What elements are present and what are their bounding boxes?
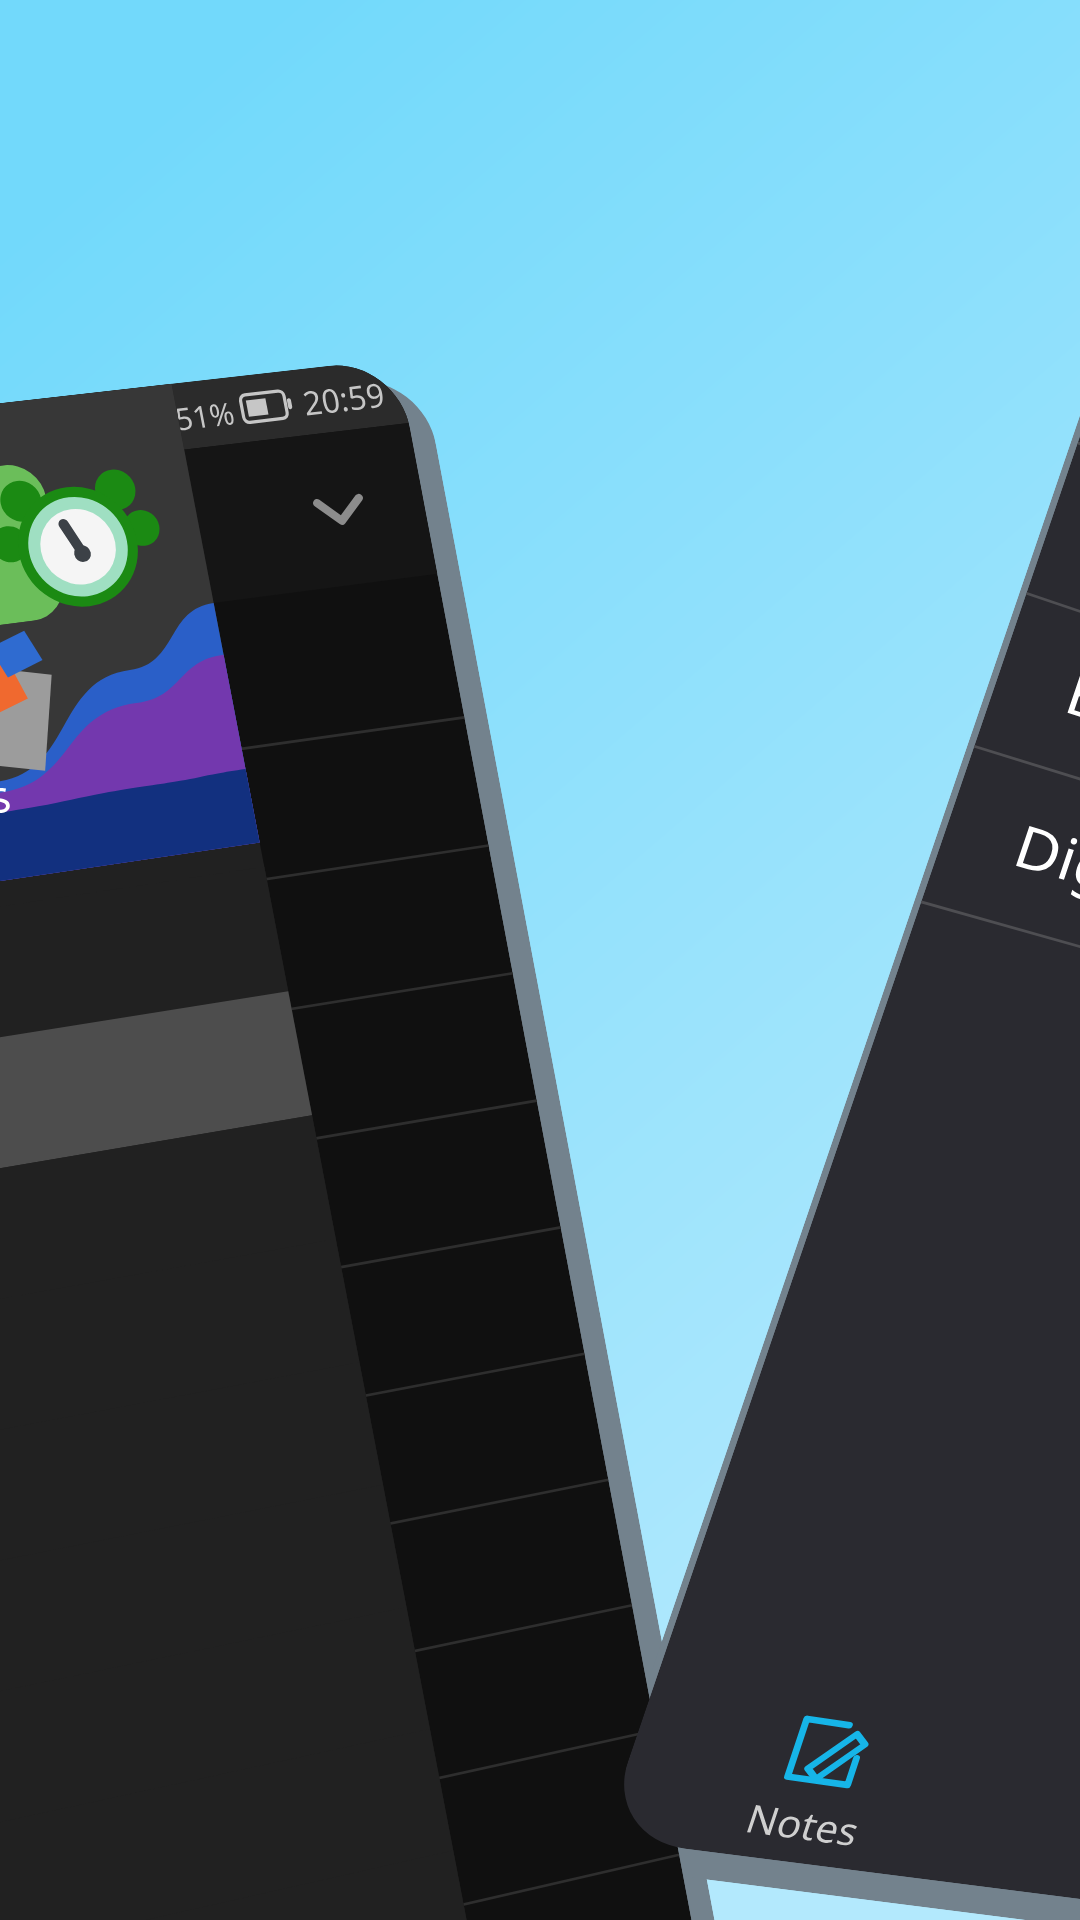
staticText: Notes — [739, 1791, 866, 1858]
button[interactable]: Einkaufen — [975, 592, 1080, 1021]
button[interactable] — [0, 1853, 702, 1920]
button[interactable]: Tasks — [969, 1728, 1080, 1920]
button[interactable] — [0, 844, 512, 1131]
staticText: 20:59 — [299, 371, 389, 424]
button[interactable]: Musik — [1027, 442, 1080, 888]
button[interactable]: DigiDocs — [922, 745, 1080, 1156]
button[interactable] — [0, 1226, 584, 1539]
button[interactable]: Notes — [602, 1672, 1020, 1885]
button[interactable] — [0, 972, 537, 1268]
staticText: Fokus Notes — [0, 764, 17, 862]
staticText: 51% — [171, 391, 238, 439]
staticText: Einkaufen — [1056, 654, 1080, 814]
button[interactable] — [0, 1604, 655, 1920]
button[interactable] — [0, 1729, 679, 1920]
button[interactable] — [0, 867, 288, 1114]
button[interactable] — [0, 991, 312, 1245]
button[interactable] — [0, 1115, 336, 1375]
button[interactable] — [0, 1478, 632, 1808]
button[interactable] — [0, 1352, 608, 1674]
button[interactable] — [0, 1850, 476, 1920]
button[interactable] — [0, 1099, 561, 1404]
staticText: DigiDocs — [1004, 806, 1080, 953]
button[interactable]: Collapse — [270, 442, 408, 576]
button[interactable] — [0, 716, 488, 994]
